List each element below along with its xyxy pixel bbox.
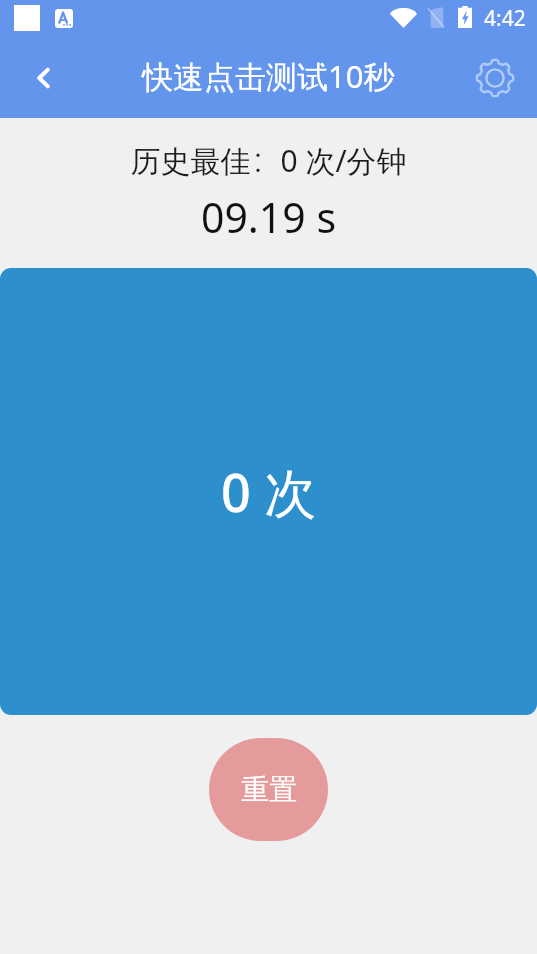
staticText: 4:42	[484, 4, 526, 33]
staticText: 快速点击测试10秒	[142, 55, 395, 97]
button[interactable]: 0 次	[0, 268, 537, 715]
staticText: 历史最佳：0 次/分钟	[0, 137, 537, 181]
staticText: 0 次	[221, 456, 317, 527]
staticText: 重置	[241, 772, 297, 807]
button[interactable]: Back	[21, 55, 67, 101]
button[interactable]: Settings	[471, 54, 519, 102]
button[interactable]: 重置	[209, 738, 328, 841]
staticText: 09.19 s	[0, 189, 537, 245]
